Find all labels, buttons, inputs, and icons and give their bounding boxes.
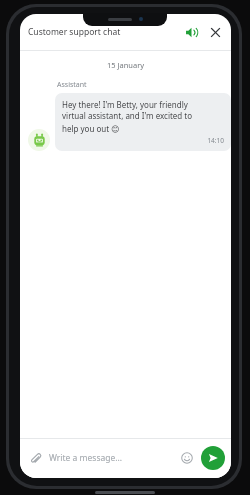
staticText: Customer support chat [28,26,181,38]
staticText: Hey there! I'm Betty, your friendly virt… [62,99,210,134]
button[interactable]: Send [201,446,225,470]
staticText: Write a message... [49,452,123,464]
button[interactable]: Hey there! I'm Betty, your friendly virt… [55,93,231,151]
button[interactable]: Attach file [27,450,44,467]
staticText: 14:10 [62,136,224,145]
staticText: 15 January [20,60,231,70]
staticText: Assistant [57,80,87,90]
button[interactable]: Write a message... [49,452,178,464]
button[interactable]: Emoji [178,449,196,467]
button[interactable]: Sound on [181,22,201,42]
button[interactable]: Close [205,22,225,42]
